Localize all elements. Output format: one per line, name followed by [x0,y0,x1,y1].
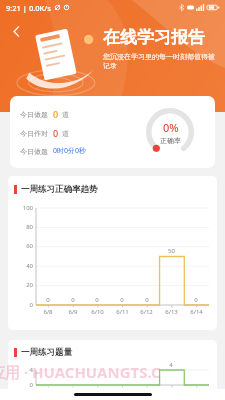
staticText: 6/12 [140,308,153,316]
button[interactable]: 一周练习正确率趋势 [8,176,217,330]
staticText: 9:21 | 0.0K/s [6,3,51,13]
staticText: 0 [12,362,16,370]
staticText: 道 [62,129,69,138]
staticText: 在线学习报告 [103,27,205,48]
staticText: 6/11 [116,308,129,316]
staticText: 6/8 [43,308,53,316]
staticText: 一周练习正确率趋势 [21,184,98,195]
staticText: 0 [29,381,33,389]
staticText: 0 [53,108,59,120]
staticText: 0 [12,362,16,370]
staticText: 0时0分0秒 [53,146,87,156]
staticText: 0 [53,127,59,139]
staticText: 4 [169,361,173,369]
staticText: 60 [26,242,33,250]
staticText: 6/10 [91,308,104,316]
staticText: 0 [12,362,16,370]
staticText: 0% [163,120,179,135]
staticText: 40 [26,262,33,270]
staticText: 一周练习题量 [21,347,72,358]
staticText: 0 [194,296,198,304]
staticText: 0 [46,296,50,304]
staticText: 今日作对 [20,129,48,138]
staticText: 4 [29,366,33,374]
staticText: 今日做题 [20,147,48,156]
staticText: 6/9 [68,308,78,316]
staticText: 今日做题 [20,110,48,119]
staticText: 0 [71,296,75,304]
staticText: 0 [95,296,99,304]
staticText: 您沉浸在学习里的每一时刻都值得被记录 [103,52,221,71]
staticText: 20 [26,281,33,289]
staticText: 6/13 [165,308,178,316]
button[interactable]: 今日做题 [10,96,215,168]
staticText: 0 [145,296,149,304]
staticText: 正确率 [160,136,181,145]
staticText: 0 [120,296,124,304]
staticText: 6/14 [190,308,203,316]
staticText: 道 [62,110,69,119]
staticText: 0 [12,362,16,370]
staticText: 80 [26,223,33,231]
staticText: 50 [168,247,175,255]
button[interactable]: 一周练习题量 [8,340,217,400]
staticText: 0 [12,362,16,370]
staticText: 0 [29,301,33,309]
button[interactable]: Back [3,18,29,44]
staticText: 应用 · HUACHUANGTS.C [0,362,161,382]
staticText: 0 [12,362,16,370]
staticText: 100 [22,204,33,212]
